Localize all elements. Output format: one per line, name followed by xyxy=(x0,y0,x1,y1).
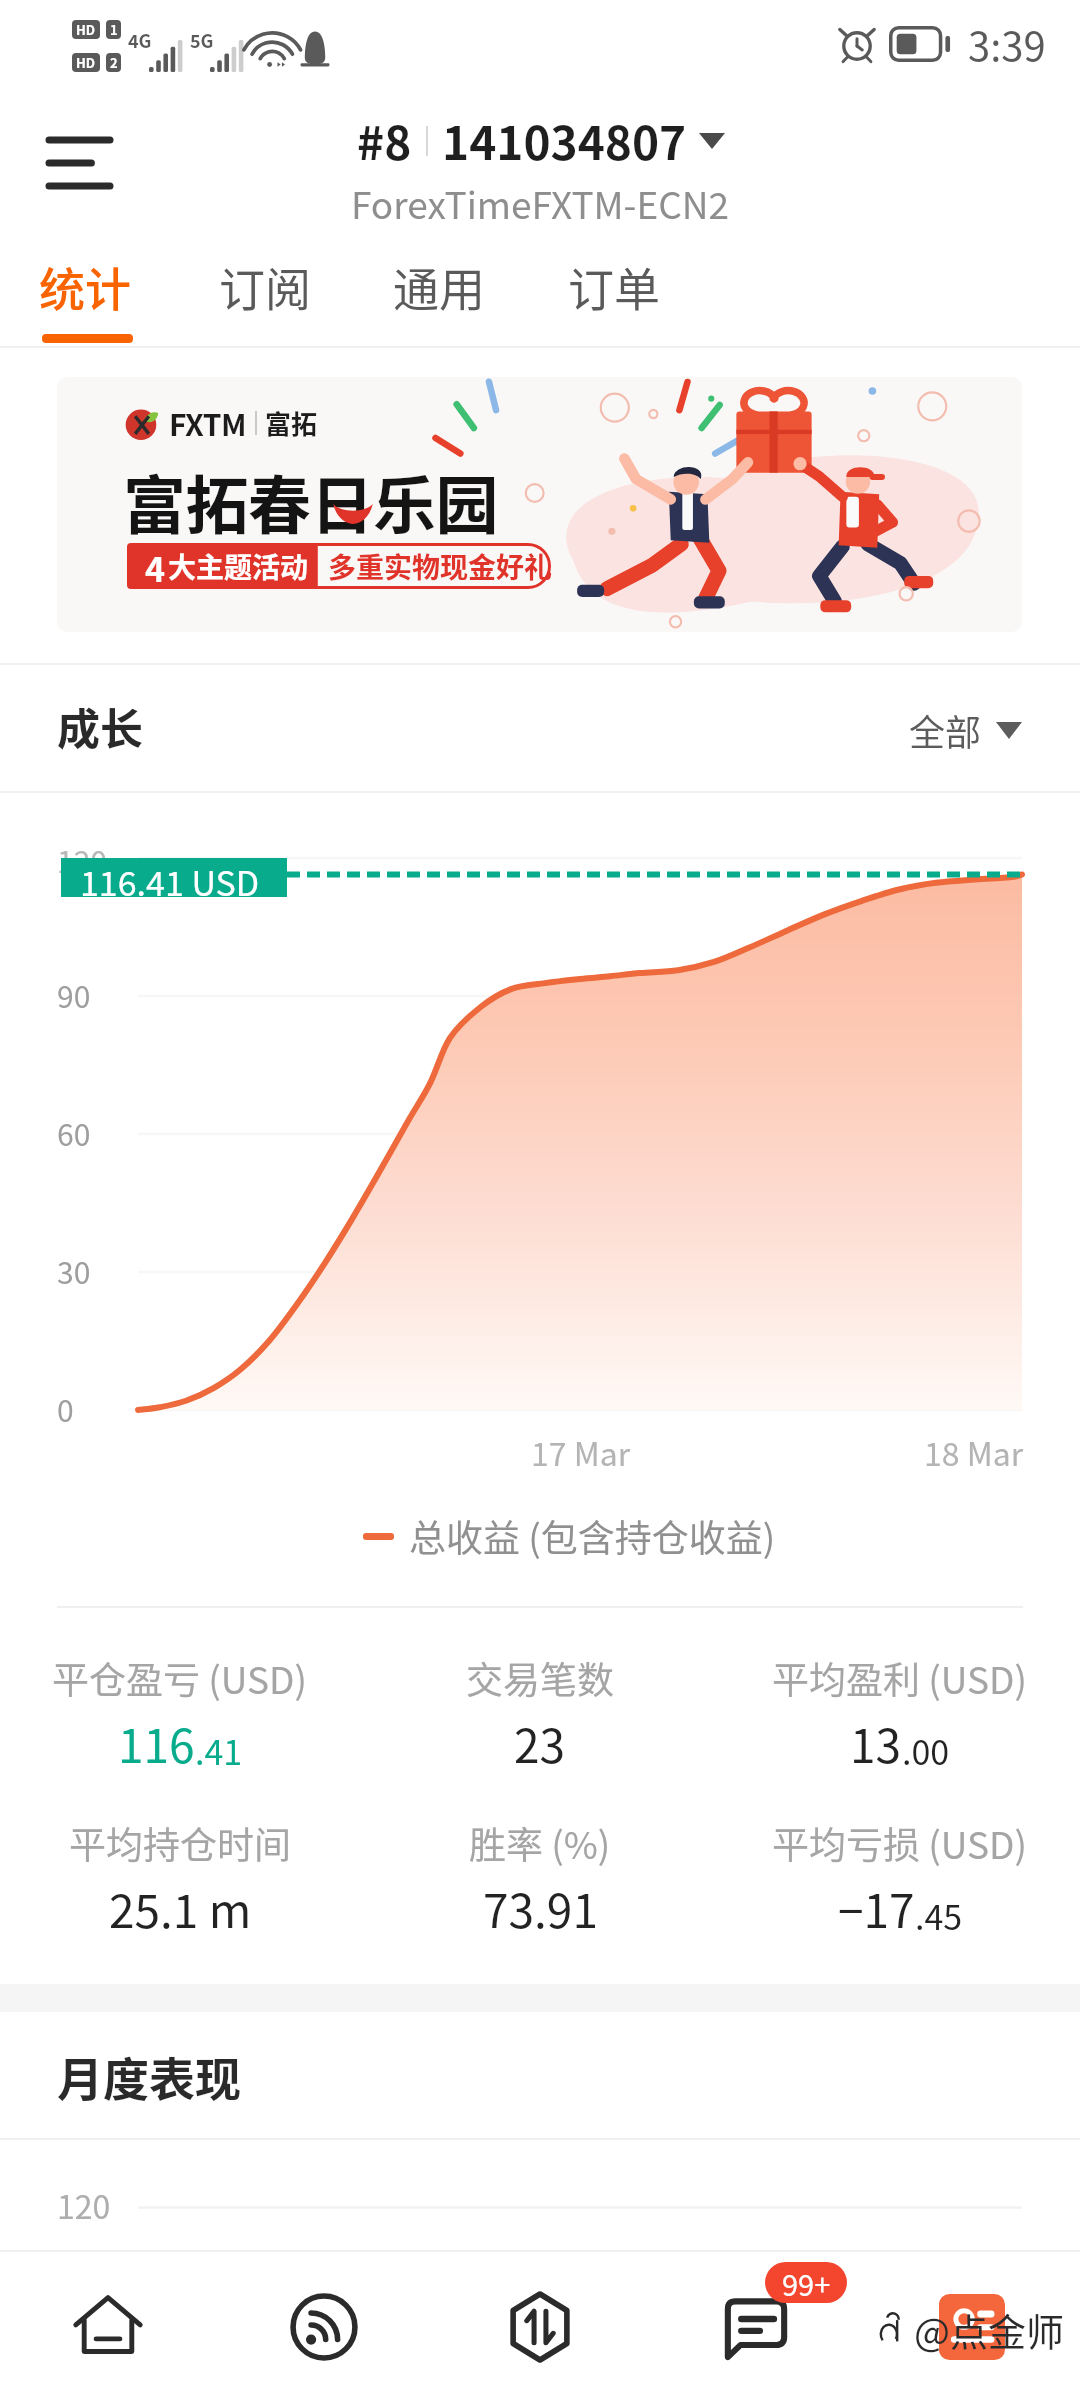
staticText: 17 Mar xyxy=(531,1429,631,1475)
staticText: 订单 xyxy=(568,253,660,320)
staticText: HD xyxy=(76,20,96,39)
button[interactable]: Trade xyxy=(432,2252,648,2400)
staticText: 平仓盈亏 (USD) xyxy=(52,1651,308,1705)
button[interactable]: Menu xyxy=(30,118,128,208)
button[interactable]: 订单 xyxy=(540,240,688,348)
staticText: 胜率 (%) xyxy=(469,1816,611,1870)
staticText: 90 xyxy=(57,973,91,1016)
staticText: .45 xyxy=(915,1891,963,1940)
staticText: 18 Mar xyxy=(924,1429,1024,1475)
staticText: 平均持仓时间 xyxy=(69,1816,291,1870)
staticText: ForexTimeFXTM-ECN2 xyxy=(351,176,730,230)
staticText: 多重实物现金好礼 xyxy=(328,546,553,587)
button[interactable]: Messages xyxy=(648,2252,864,2400)
staticText: 订阅 xyxy=(219,253,311,320)
button[interactable]: Home xyxy=(0,2252,216,2400)
staticText: 73.91 xyxy=(483,1875,598,1942)
staticText: 23 xyxy=(514,1710,566,1777)
button[interactable]: #8 xyxy=(351,107,730,230)
staticText: 交易笔数 xyxy=(466,1651,614,1705)
staticText: 3:39 xyxy=(968,15,1046,73)
staticText: 13 xyxy=(850,1710,902,1777)
staticText: 30 xyxy=(57,1249,91,1292)
staticText: 4 xyxy=(145,543,166,589)
button[interactable]: 通用 xyxy=(365,240,513,348)
staticText: .00 xyxy=(902,1726,950,1775)
button[interactable]: 统计 xyxy=(11,240,159,348)
staticText: 25.1 m xyxy=(109,1875,252,1942)
button[interactable]: 订阅 xyxy=(191,240,339,348)
staticText: 2 xyxy=(110,53,118,72)
staticText: 116 xyxy=(118,1710,195,1777)
staticText: 大主题活动 xyxy=(168,546,309,587)
staticText: 成长 xyxy=(57,695,143,757)
staticText: 99+ xyxy=(782,2262,831,2303)
staticText: 0 xyxy=(57,1387,74,1430)
button[interactable]: 全部 xyxy=(909,704,1022,756)
staticText: 月度表现 xyxy=(57,2043,241,2110)
staticText: 4G xyxy=(128,27,152,53)
staticText: 120 xyxy=(57,838,107,881)
staticText: 141034807 xyxy=(442,107,687,174)
staticText: FXTM xyxy=(169,401,247,444)
staticText: 平均亏损 (USD) xyxy=(772,1816,1028,1870)
button[interactable]: Profile xyxy=(864,2252,1080,2400)
staticText: 120 xyxy=(57,2182,111,2228)
staticText: #8 xyxy=(357,107,412,174)
staticText: 平均盈利 (USD) xyxy=(772,1651,1028,1705)
staticText: .41 xyxy=(195,1726,243,1775)
staticText: 60 xyxy=(57,1111,91,1154)
staticText: 116.41 USD xyxy=(80,858,260,896)
staticText: 5G xyxy=(190,27,214,53)
button[interactable]: FXTM xyxy=(57,377,1022,632)
staticText: 富拓 xyxy=(265,404,318,442)
staticText: 1 xyxy=(110,20,118,39)
staticText: 全部 xyxy=(909,704,982,756)
staticText: 总收益 (包含持仓收益) xyxy=(409,1509,776,1563)
button[interactable]: Signals xyxy=(216,2252,432,2400)
staticText: HD xyxy=(76,53,96,72)
staticText: −17 xyxy=(838,1875,915,1942)
staticText: 通用 xyxy=(393,253,485,320)
staticText: 富拓春日乐园 xyxy=(123,455,498,546)
staticText: 统计 xyxy=(39,253,131,320)
staticText: @点金师 xyxy=(914,2302,1064,2357)
